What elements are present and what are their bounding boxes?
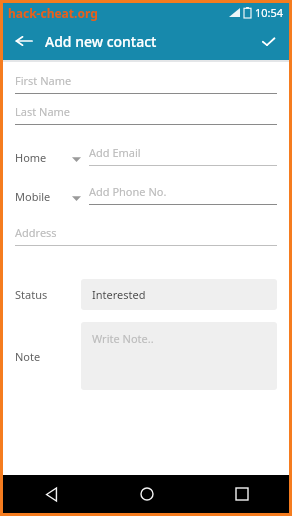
button[interactable]: Add Phone No. [89,184,277,205]
button[interactable]: First Name [15,73,277,94]
staticText: Add Phone No. [89,184,167,199]
button[interactable]: Recent apps [194,475,289,513]
staticText: Address [15,225,57,240]
button[interactable]: Home [15,151,81,166]
staticText: First Name [15,73,72,88]
button[interactable]: Address [15,225,277,246]
button[interactable]: Last Name [15,104,277,125]
staticText: Add new contact [45,32,157,51]
button[interactable]: Write Note.. [81,322,277,390]
button[interactable]: Back [3,475,99,513]
button[interactable]: Home [99,475,194,513]
button[interactable]: Back [12,29,36,53]
staticText: Home [15,150,47,165]
button[interactable]: Save contact [256,29,280,53]
button[interactable]: Mobile [15,190,81,205]
staticText: Last Name [15,104,71,119]
staticText: Interested [92,287,146,302]
staticText: Write Note.. [92,331,154,346]
staticText: Note [15,349,81,364]
button[interactable]: Add Email [89,145,277,166]
staticText: Status [15,287,81,302]
button[interactable]: Interested [81,279,277,310]
staticText: 10:54 [255,5,284,20]
staticText: hack-cheat.org [8,5,98,21]
staticText: Mobile [15,189,51,204]
staticText: Add Email [89,145,141,160]
